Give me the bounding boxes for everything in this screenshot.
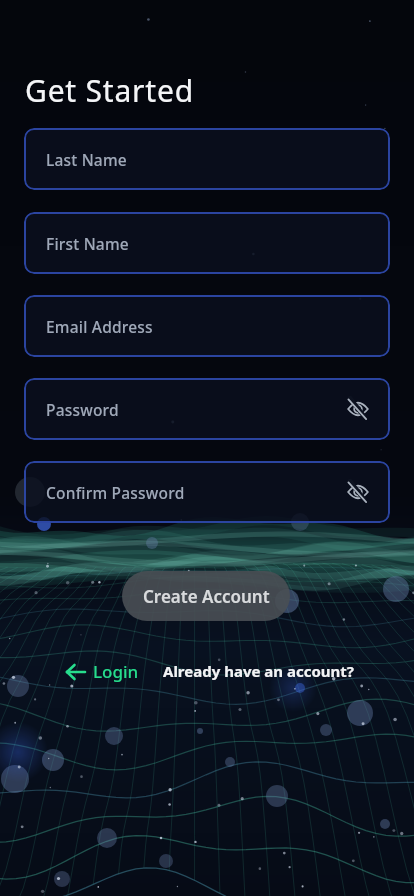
staticText: Last Name bbox=[46, 149, 127, 170]
button[interactable]: Email Address bbox=[24, 295, 390, 357]
button[interactable]: Login bbox=[60, 660, 145, 683]
button[interactable]: First Name bbox=[24, 212, 390, 274]
button[interactable]: Last Name bbox=[24, 128, 390, 190]
button[interactable]: Password bbox=[24, 378, 390, 440]
staticText: Already have an account? bbox=[163, 661, 354, 681]
button[interactable]: Create Account bbox=[122, 571, 290, 621]
button[interactable]: Confirm Password bbox=[24, 461, 390, 523]
staticText: Email Address bbox=[46, 316, 153, 337]
staticText: Confirm Password bbox=[46, 482, 185, 503]
staticText: Get Started bbox=[25, 70, 194, 111]
staticText: Password bbox=[46, 399, 119, 420]
staticText: Create Account bbox=[143, 585, 270, 608]
staticText: First Name bbox=[46, 233, 129, 254]
staticText: Login bbox=[93, 660, 139, 683]
